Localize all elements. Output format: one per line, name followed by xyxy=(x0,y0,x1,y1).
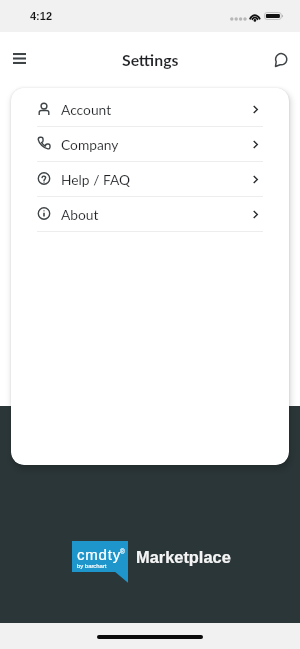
staticText: Settings xyxy=(122,50,179,69)
button[interactable]: About xyxy=(11,197,289,231)
button[interactable]: Open navigation menu xyxy=(1,40,37,76)
button[interactable]: Account xyxy=(11,92,289,126)
staticText: by barchart xyxy=(77,563,107,570)
staticText: Account xyxy=(61,101,112,118)
staticText: 4:12 xyxy=(30,10,53,22)
staticText: cmdty xyxy=(77,546,122,563)
staticText: About xyxy=(61,206,99,223)
button[interactable]: Company xyxy=(11,127,289,161)
button[interactable]: Chat xyxy=(258,41,294,77)
staticText: Company xyxy=(61,136,119,153)
staticText: ® xyxy=(120,548,125,555)
button[interactable]: Help / FAQ xyxy=(11,162,289,196)
staticText: Help / FAQ xyxy=(61,171,131,188)
staticText: Marketplace xyxy=(136,548,231,566)
